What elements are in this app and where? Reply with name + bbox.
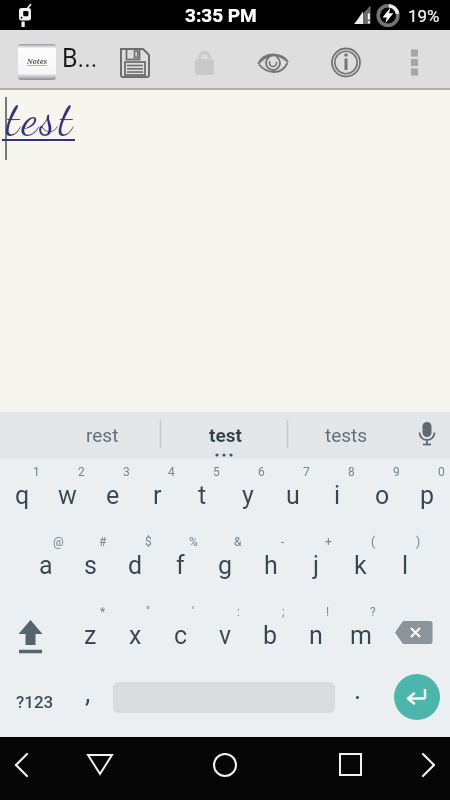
staticText: B... — [62, 44, 98, 73]
staticText: - — [281, 535, 285, 549]
button[interactable]: rest — [42, 412, 162, 457]
staticText: rest — [86, 424, 119, 446]
button[interactable]: g — [203, 530, 248, 600]
button[interactable] — [0, 737, 90, 800]
staticText: + — [325, 535, 332, 549]
staticText: : — [237, 605, 240, 619]
staticText: @ — [53, 535, 64, 549]
staticText: ? — [370, 605, 376, 619]
staticText: 4 — [168, 465, 175, 479]
staticText: Notes — [27, 57, 48, 67]
button[interactable]: test — [165, 412, 285, 457]
staticText: p — [420, 481, 435, 510]
button[interactable]: ?123 — [0, 667, 70, 737]
staticText: 9 — [393, 465, 400, 479]
staticText: 3 — [123, 465, 130, 479]
staticText: ' — [192, 605, 195, 619]
button[interactable]: a — [23, 530, 68, 600]
button[interactable] — [0, 597, 67, 667]
staticText: % — [189, 535, 198, 549]
staticText: . — [354, 674, 362, 706]
staticText: ?123 — [16, 692, 54, 712]
button[interactable]: j — [293, 530, 338, 600]
staticText: ) — [416, 535, 421, 549]
button[interactable]: t — [180, 460, 225, 530]
staticText: tests — [325, 424, 368, 446]
button[interactable] — [0, 30, 450, 90]
staticText: s — [84, 551, 97, 580]
button[interactable]: e — [90, 460, 135, 530]
staticText: 2 — [78, 465, 85, 479]
button[interactable]: o — [360, 460, 405, 530]
staticText: c — [174, 621, 188, 650]
button[interactable]: z — [68, 600, 113, 670]
button[interactable] — [390, 667, 445, 737]
staticText: m — [350, 621, 372, 650]
staticText: a — [39, 551, 53, 580]
button[interactable]: c — [158, 600, 203, 670]
button[interactable]: . — [340, 655, 376, 725]
staticText: ! — [326, 605, 330, 619]
button[interactable]: tests — [286, 412, 406, 457]
staticText: w — [58, 481, 77, 510]
staticText: " — [146, 605, 150, 619]
staticText: v — [219, 621, 232, 650]
button[interactable]: s — [68, 530, 113, 600]
staticText: b — [263, 621, 278, 650]
button[interactable]: i — [315, 460, 360, 530]
staticText: g — [218, 551, 233, 580]
button[interactable] — [180, 737, 270, 800]
button[interactable]: l — [383, 530, 428, 600]
staticText: 1 — [33, 465, 40, 479]
staticText: u — [286, 481, 300, 510]
button[interactable]: q — [0, 460, 45, 530]
button[interactable] — [383, 597, 450, 667]
staticText: q — [15, 481, 30, 510]
staticText: j — [313, 551, 319, 580]
staticText: i — [334, 481, 341, 510]
button[interactable] — [90, 737, 180, 800]
staticText: n — [309, 621, 323, 650]
staticText: 5 — [213, 465, 220, 479]
staticText: ( — [371, 535, 376, 549]
button[interactable]: x — [113, 600, 158, 670]
staticText: l — [402, 551, 409, 580]
staticText: 8 — [348, 465, 355, 479]
button[interactable]: b — [248, 600, 293, 670]
staticText: * — [100, 605, 106, 619]
button[interactable]: f — [158, 530, 203, 600]
staticText: $ — [145, 535, 152, 549]
button[interactable]: r — [135, 460, 180, 530]
staticText: x — [129, 621, 142, 650]
staticText: # — [99, 535, 107, 549]
staticText: t — [198, 481, 207, 510]
staticText: 7 — [303, 465, 310, 479]
staticText: f — [176, 551, 185, 580]
button[interactable]: y — [225, 460, 270, 530]
staticText: d — [128, 551, 143, 580]
staticText: k — [354, 551, 367, 580]
button[interactable]: w — [45, 460, 90, 530]
staticText: 19% — [408, 6, 440, 26]
button[interactable]: Notes — [18, 44, 56, 80]
button[interactable]: h — [248, 530, 293, 600]
staticText: & — [234, 535, 242, 549]
button[interactable] — [106, 667, 340, 737]
button[interactable]: , — [70, 658, 106, 728]
button[interactable] — [270, 737, 360, 800]
button[interactable]: d — [113, 530, 158, 600]
staticText: ; — [282, 605, 285, 619]
button[interactable]: n — [293, 600, 338, 670]
staticText: y — [242, 481, 254, 510]
staticText: 6 — [258, 465, 265, 479]
staticText: h — [264, 551, 278, 580]
button[interactable]: k — [338, 530, 383, 600]
button[interactable]: v — [203, 600, 248, 670]
staticText: , — [85, 677, 91, 709]
button[interactable] — [360, 737, 450, 800]
button[interactable]: u — [270, 460, 315, 530]
staticText: 3:35 PM — [185, 4, 257, 26]
staticText: 0 — [438, 465, 445, 479]
button[interactable]: p — [405, 460, 450, 530]
button[interactable]: m — [338, 600, 383, 670]
